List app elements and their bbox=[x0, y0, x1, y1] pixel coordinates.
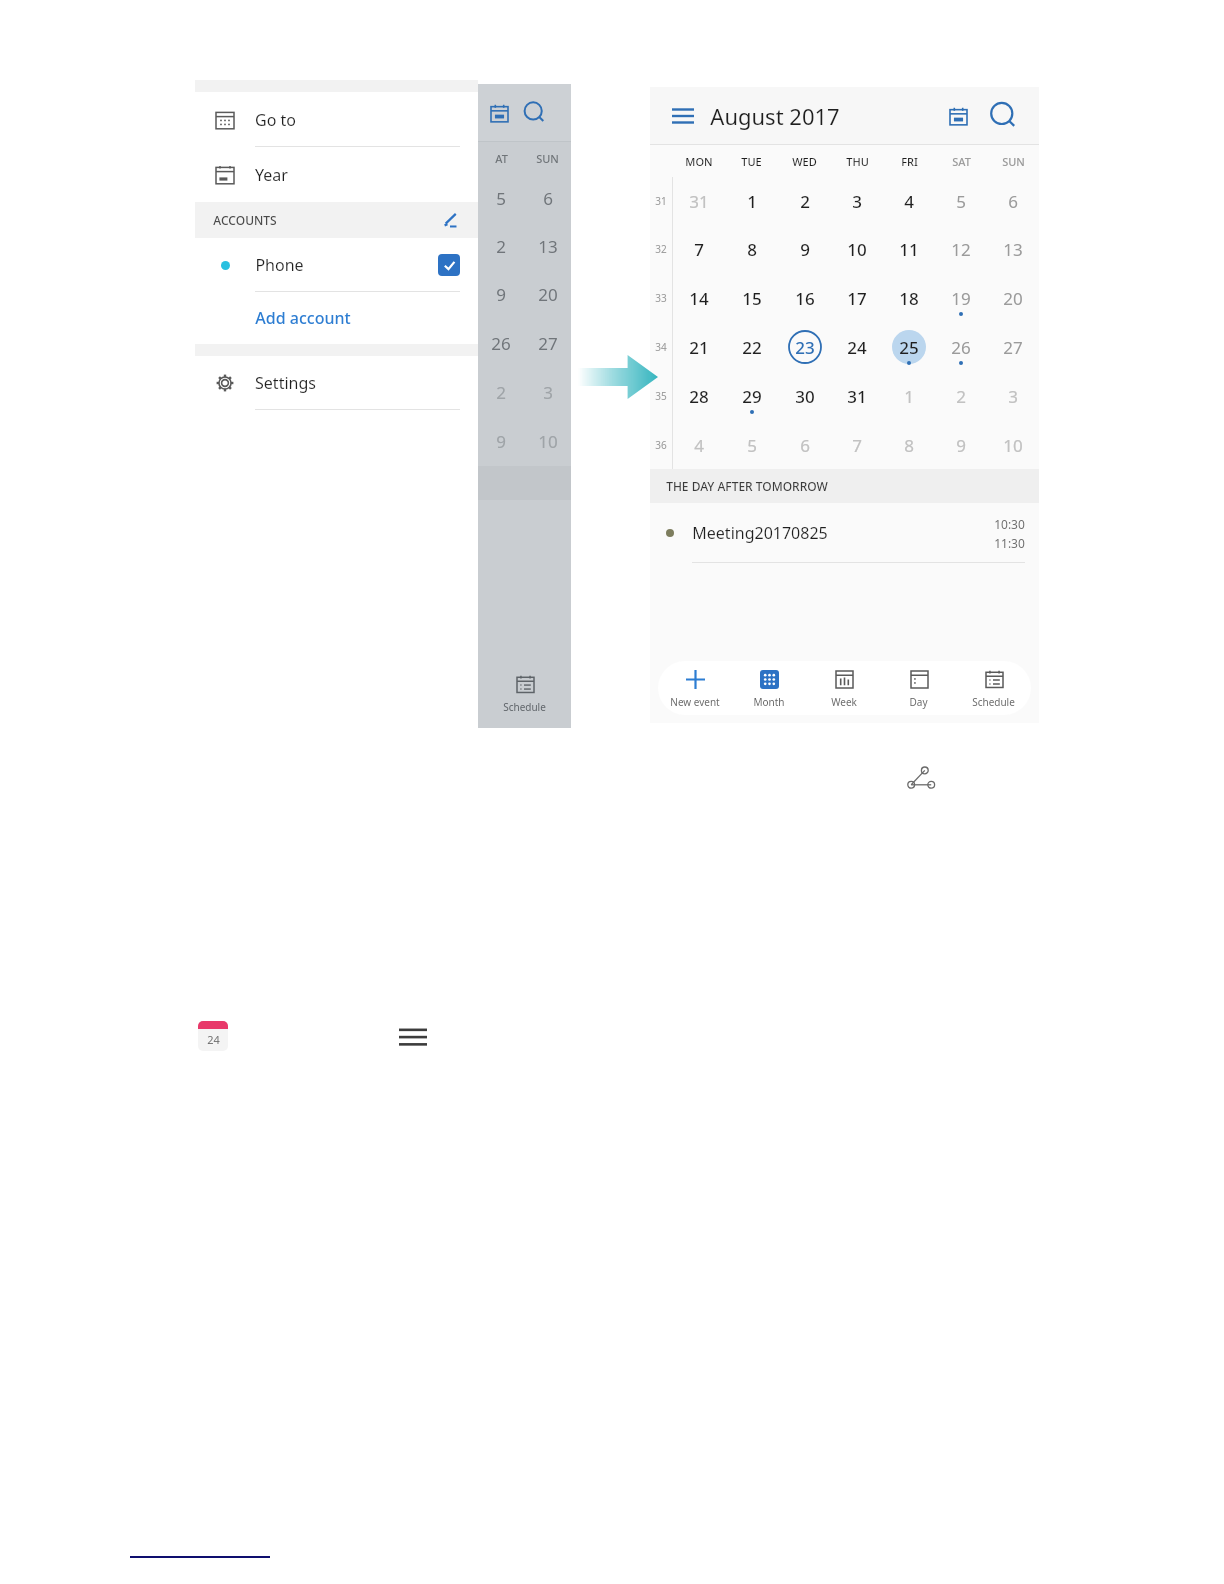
button[interactable]: Phone bbox=[195, 238, 478, 292]
button[interactable]: 8 bbox=[883, 420, 935, 469]
staticText: 6 bbox=[800, 434, 810, 457]
staticText: Month bbox=[753, 695, 785, 709]
staticText: Schedule bbox=[503, 700, 546, 714]
staticText: THE DAY AFTER TOMORROW bbox=[666, 478, 828, 494]
button[interactable]: 5 bbox=[935, 177, 987, 225]
staticText: 11:30 bbox=[994, 535, 1025, 551]
button[interactable]: 4 bbox=[883, 177, 935, 225]
button[interactable]: 6 bbox=[987, 177, 1039, 225]
staticText: 31 bbox=[847, 385, 867, 408]
button[interactable]: Edit accounts bbox=[438, 208, 462, 232]
button[interactable]: 13 bbox=[987, 225, 1039, 273]
button[interactable]: ACCOUNTS bbox=[195, 202, 478, 238]
button[interactable]: 21 bbox=[672, 322, 725, 371]
button[interactable]: Open navigation drawer bbox=[668, 101, 698, 131]
button[interactable]: Search bbox=[987, 99, 1021, 133]
button[interactable]: 3 bbox=[831, 177, 883, 225]
staticText: 7 bbox=[694, 238, 704, 261]
button[interactable]: Go to today bbox=[941, 99, 975, 133]
button[interactable]: 7 bbox=[831, 420, 883, 469]
button[interactable]: 27 bbox=[987, 322, 1039, 371]
button[interactable]: Go to bbox=[195, 92, 478, 147]
staticText: 25 bbox=[899, 336, 919, 359]
button[interactable]: 10 bbox=[831, 225, 883, 273]
staticText: 27 bbox=[538, 332, 558, 355]
button[interactable]: 4 bbox=[672, 420, 725, 469]
staticText: 14 bbox=[689, 287, 709, 310]
button[interactable]: Month bbox=[732, 661, 806, 715]
button[interactable]: 15 bbox=[725, 273, 778, 322]
staticText: 19 bbox=[951, 287, 971, 310]
button[interactable]: 23 bbox=[778, 322, 831, 371]
staticText: 3 bbox=[1008, 385, 1018, 408]
staticText: 8 bbox=[747, 238, 757, 261]
staticText: 22 bbox=[742, 336, 762, 359]
staticText: 5 bbox=[747, 434, 757, 457]
button[interactable]: Settings bbox=[195, 356, 478, 410]
button[interactable]: 8 bbox=[725, 225, 778, 273]
staticText: ACCOUNTS bbox=[213, 212, 277, 228]
button[interactable]: 9 bbox=[778, 225, 831, 273]
button[interactable]: Add account bbox=[195, 292, 478, 344]
button[interactable]: 24 bbox=[831, 322, 883, 371]
staticText: WED bbox=[792, 154, 817, 169]
button[interactable]: 11 bbox=[883, 225, 935, 273]
button[interactable]: 10 bbox=[987, 420, 1039, 469]
button[interactable]: 28 bbox=[672, 371, 725, 420]
staticText: Schedule bbox=[972, 695, 1015, 709]
button[interactable]: 9 bbox=[935, 420, 987, 469]
button[interactable]: New event bbox=[658, 661, 732, 715]
button[interactable]: 17 bbox=[831, 273, 883, 322]
button[interactable]: 18 bbox=[883, 273, 935, 322]
staticText: 1 bbox=[747, 190, 757, 213]
staticText: 21 bbox=[689, 336, 709, 359]
staticText: THU bbox=[846, 154, 869, 169]
staticText: 16 bbox=[795, 287, 815, 310]
staticText: 30 bbox=[795, 385, 815, 408]
staticText: 28 bbox=[689, 385, 709, 408]
button[interactable]: Meeting20170825 bbox=[650, 503, 1039, 563]
button[interactable]: 16 bbox=[778, 273, 831, 322]
staticText: 3 bbox=[852, 190, 862, 213]
staticText: 4 bbox=[694, 434, 704, 457]
staticText: Year bbox=[255, 164, 288, 186]
button[interactable]: 3 bbox=[987, 371, 1039, 420]
button[interactable]: 19 bbox=[935, 273, 987, 322]
button[interactable]: 6 bbox=[778, 420, 831, 469]
staticText: New event bbox=[670, 695, 720, 709]
staticText: 31 bbox=[689, 190, 709, 213]
button[interactable]: 2 bbox=[935, 371, 987, 420]
button[interactable]: 29 bbox=[725, 371, 778, 420]
button[interactable]: 1 bbox=[725, 177, 778, 225]
staticText: 24 bbox=[207, 1032, 220, 1047]
staticText: 34 bbox=[655, 340, 667, 354]
button[interactable]: 5 bbox=[725, 420, 778, 469]
staticText: 5 bbox=[496, 187, 506, 210]
staticText: Meeting20170825 bbox=[692, 522, 828, 544]
staticText: 13 bbox=[1003, 238, 1023, 261]
button[interactable]: Year bbox=[195, 147, 478, 202]
staticText: SUN bbox=[1002, 154, 1025, 169]
staticText: 2 bbox=[800, 190, 810, 213]
button[interactable]: 30 bbox=[778, 371, 831, 420]
staticText: 13 bbox=[538, 235, 558, 258]
button[interactable]: 20 bbox=[987, 273, 1039, 322]
button[interactable]: 1 bbox=[883, 371, 935, 420]
staticText: SAT bbox=[952, 154, 971, 169]
staticText: Week bbox=[831, 695, 857, 709]
button[interactable]: 31 bbox=[831, 371, 883, 420]
button[interactable]: 12 bbox=[935, 225, 987, 273]
button[interactable]: 2 bbox=[778, 177, 831, 225]
button[interactable]: 7 bbox=[672, 225, 725, 273]
button[interactable]: Calendar app bbox=[198, 1021, 228, 1051]
button[interactable]: 26 bbox=[935, 322, 987, 371]
button[interactable]: Schedule bbox=[956, 661, 1031, 715]
staticText: 7 bbox=[852, 434, 862, 457]
staticText: Phone bbox=[255, 254, 304, 276]
button[interactable]: 14 bbox=[672, 273, 725, 322]
button[interactable]: 22 bbox=[725, 322, 778, 371]
button[interactable]: 25 bbox=[883, 322, 935, 371]
button[interactable]: Day bbox=[881, 661, 956, 715]
button[interactable]: Week bbox=[806, 661, 881, 715]
button[interactable]: 31 bbox=[672, 177, 725, 225]
